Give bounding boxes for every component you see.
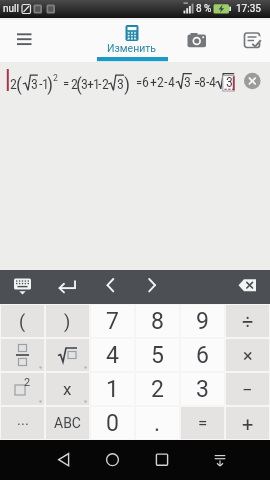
button[interactable]: Изменить — [96, 18, 168, 62]
staticText: 8 — [151, 308, 164, 335]
button[interactable]: ... — [1, 407, 44, 439]
button[interactable] — [187, 440, 245, 480]
button[interactable]: 3 — [181, 373, 224, 405]
staticText: 17:35 — [236, 3, 261, 15]
staticText: + — [242, 412, 254, 435]
button[interactable]: 0 — [91, 407, 134, 439]
button[interactable]: 4 — [91, 339, 134, 371]
staticText: = — [198, 413, 208, 433]
button[interactable]: = — [181, 407, 224, 439]
button[interactable]: 6 — [181, 339, 224, 371]
staticText: − — [242, 379, 253, 400]
staticText: 7 — [106, 308, 119, 335]
button[interactable] — [183, 27, 210, 53]
button[interactable] — [90, 270, 135, 304]
button[interactable]: 5 — [136, 339, 179, 371]
button[interactable]: 8 — [136, 305, 179, 337]
button[interactable]: 1 — [91, 373, 134, 405]
staticText: 9 — [196, 308, 209, 335]
staticText: ÷ — [242, 310, 254, 333]
button[interactable]: ÷ — [226, 305, 269, 337]
button[interactable]: − — [226, 373, 269, 405]
button[interactable]: 9 — [181, 305, 224, 337]
button[interactable]: ( — [1, 305, 44, 337]
button[interactable] — [242, 71, 263, 92]
button[interactable]: . — [136, 407, 179, 439]
button[interactable] — [88, 440, 137, 480]
button[interactable] — [137, 440, 187, 480]
staticText: Изменить — [107, 42, 157, 54]
button[interactable] — [8, 25, 40, 55]
staticText: 2 — [24, 376, 31, 389]
staticText: ... — [17, 411, 29, 429]
staticText: 6 — [196, 342, 209, 369]
staticText: 2 — [151, 376, 164, 403]
button[interactable]: x — [46, 373, 89, 405]
staticText: ( — [19, 311, 26, 332]
button[interactable] — [135, 270, 180, 304]
button[interactable] — [40, 440, 88, 480]
staticText: 8 % — [196, 3, 212, 15]
button[interactable]: × — [226, 339, 269, 371]
staticText: ) — [64, 311, 71, 332]
staticText: × — [243, 345, 253, 366]
button[interactable] — [240, 27, 266, 53]
button[interactable]: 7 — [91, 305, 134, 337]
staticText: ABC — [54, 415, 81, 431]
staticText: 3 — [196, 376, 209, 403]
staticText: 1 — [106, 376, 119, 403]
staticText: x — [63, 379, 72, 399]
staticText: 4 — [106, 342, 119, 369]
staticText: 5 — [151, 342, 164, 369]
staticText: . — [154, 410, 161, 437]
button[interactable]: 2 — [136, 373, 179, 405]
button[interactable]: + — [226, 407, 269, 439]
button[interactable] — [45, 270, 90, 304]
button[interactable]: 2 — [1, 373, 44, 405]
staticText: 0 — [106, 410, 119, 437]
staticText: null — [3, 3, 19, 15]
button[interactable] — [1, 339, 44, 371]
button[interactable]: ) — [46, 305, 89, 337]
button[interactable] — [0, 270, 45, 304]
button[interactable] — [225, 270, 270, 304]
button[interactable]: ABC — [46, 407, 89, 439]
button[interactable] — [46, 339, 89, 371]
